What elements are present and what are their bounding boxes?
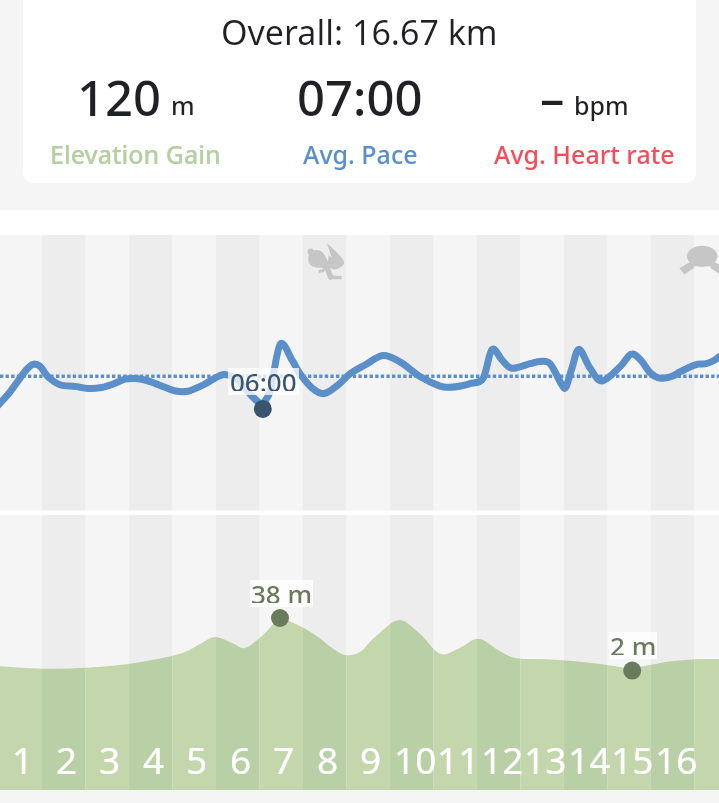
staticText: m <box>171 88 195 122</box>
button[interactable]: 06:00 <box>228 368 299 395</box>
staticText: 5 <box>186 734 208 784</box>
staticText: 12 <box>481 734 524 784</box>
staticText: 15 <box>611 734 654 784</box>
staticText: 120 <box>77 64 162 131</box>
staticText: 06:00 <box>230 364 297 391</box>
button[interactable]: 38 m <box>250 580 313 607</box>
button[interactable]: 06:00 <box>0 235 719 790</box>
staticText: Avg. Heart rate <box>494 137 675 171</box>
button[interactable]: – <box>472 64 696 171</box>
staticText: 07:00 <box>297 64 423 131</box>
staticText: 8 <box>317 734 339 784</box>
staticText: 1 <box>12 734 34 784</box>
staticText: 11 <box>437 734 480 784</box>
staticText: – <box>540 64 565 131</box>
staticText: 3 <box>99 734 121 784</box>
button[interactable]: Overall: 16.67 km <box>23 0 696 183</box>
button[interactable]: 120 <box>23 64 248 171</box>
staticText: 6 <box>230 734 252 784</box>
staticText: bpm <box>574 88 629 122</box>
staticText: 7 <box>273 734 295 784</box>
staticText: 10 <box>394 734 437 784</box>
staticText: Elevation Gain <box>50 137 221 171</box>
staticText: 13 <box>524 734 567 784</box>
staticText: 38 m <box>251 576 313 603</box>
staticText: 9 <box>360 734 382 784</box>
button[interactable]: 07:00 <box>248 64 472 171</box>
staticText: 2 <box>56 734 78 784</box>
staticText: 14 <box>568 734 611 784</box>
staticText: 16 <box>655 734 698 784</box>
button[interactable]: 2 m <box>609 632 657 659</box>
staticText: Avg. Pace <box>303 137 418 171</box>
staticText: Overall: 16.67 km <box>221 9 498 55</box>
staticText: 2 m <box>610 628 657 655</box>
staticText: 4 <box>143 734 165 784</box>
